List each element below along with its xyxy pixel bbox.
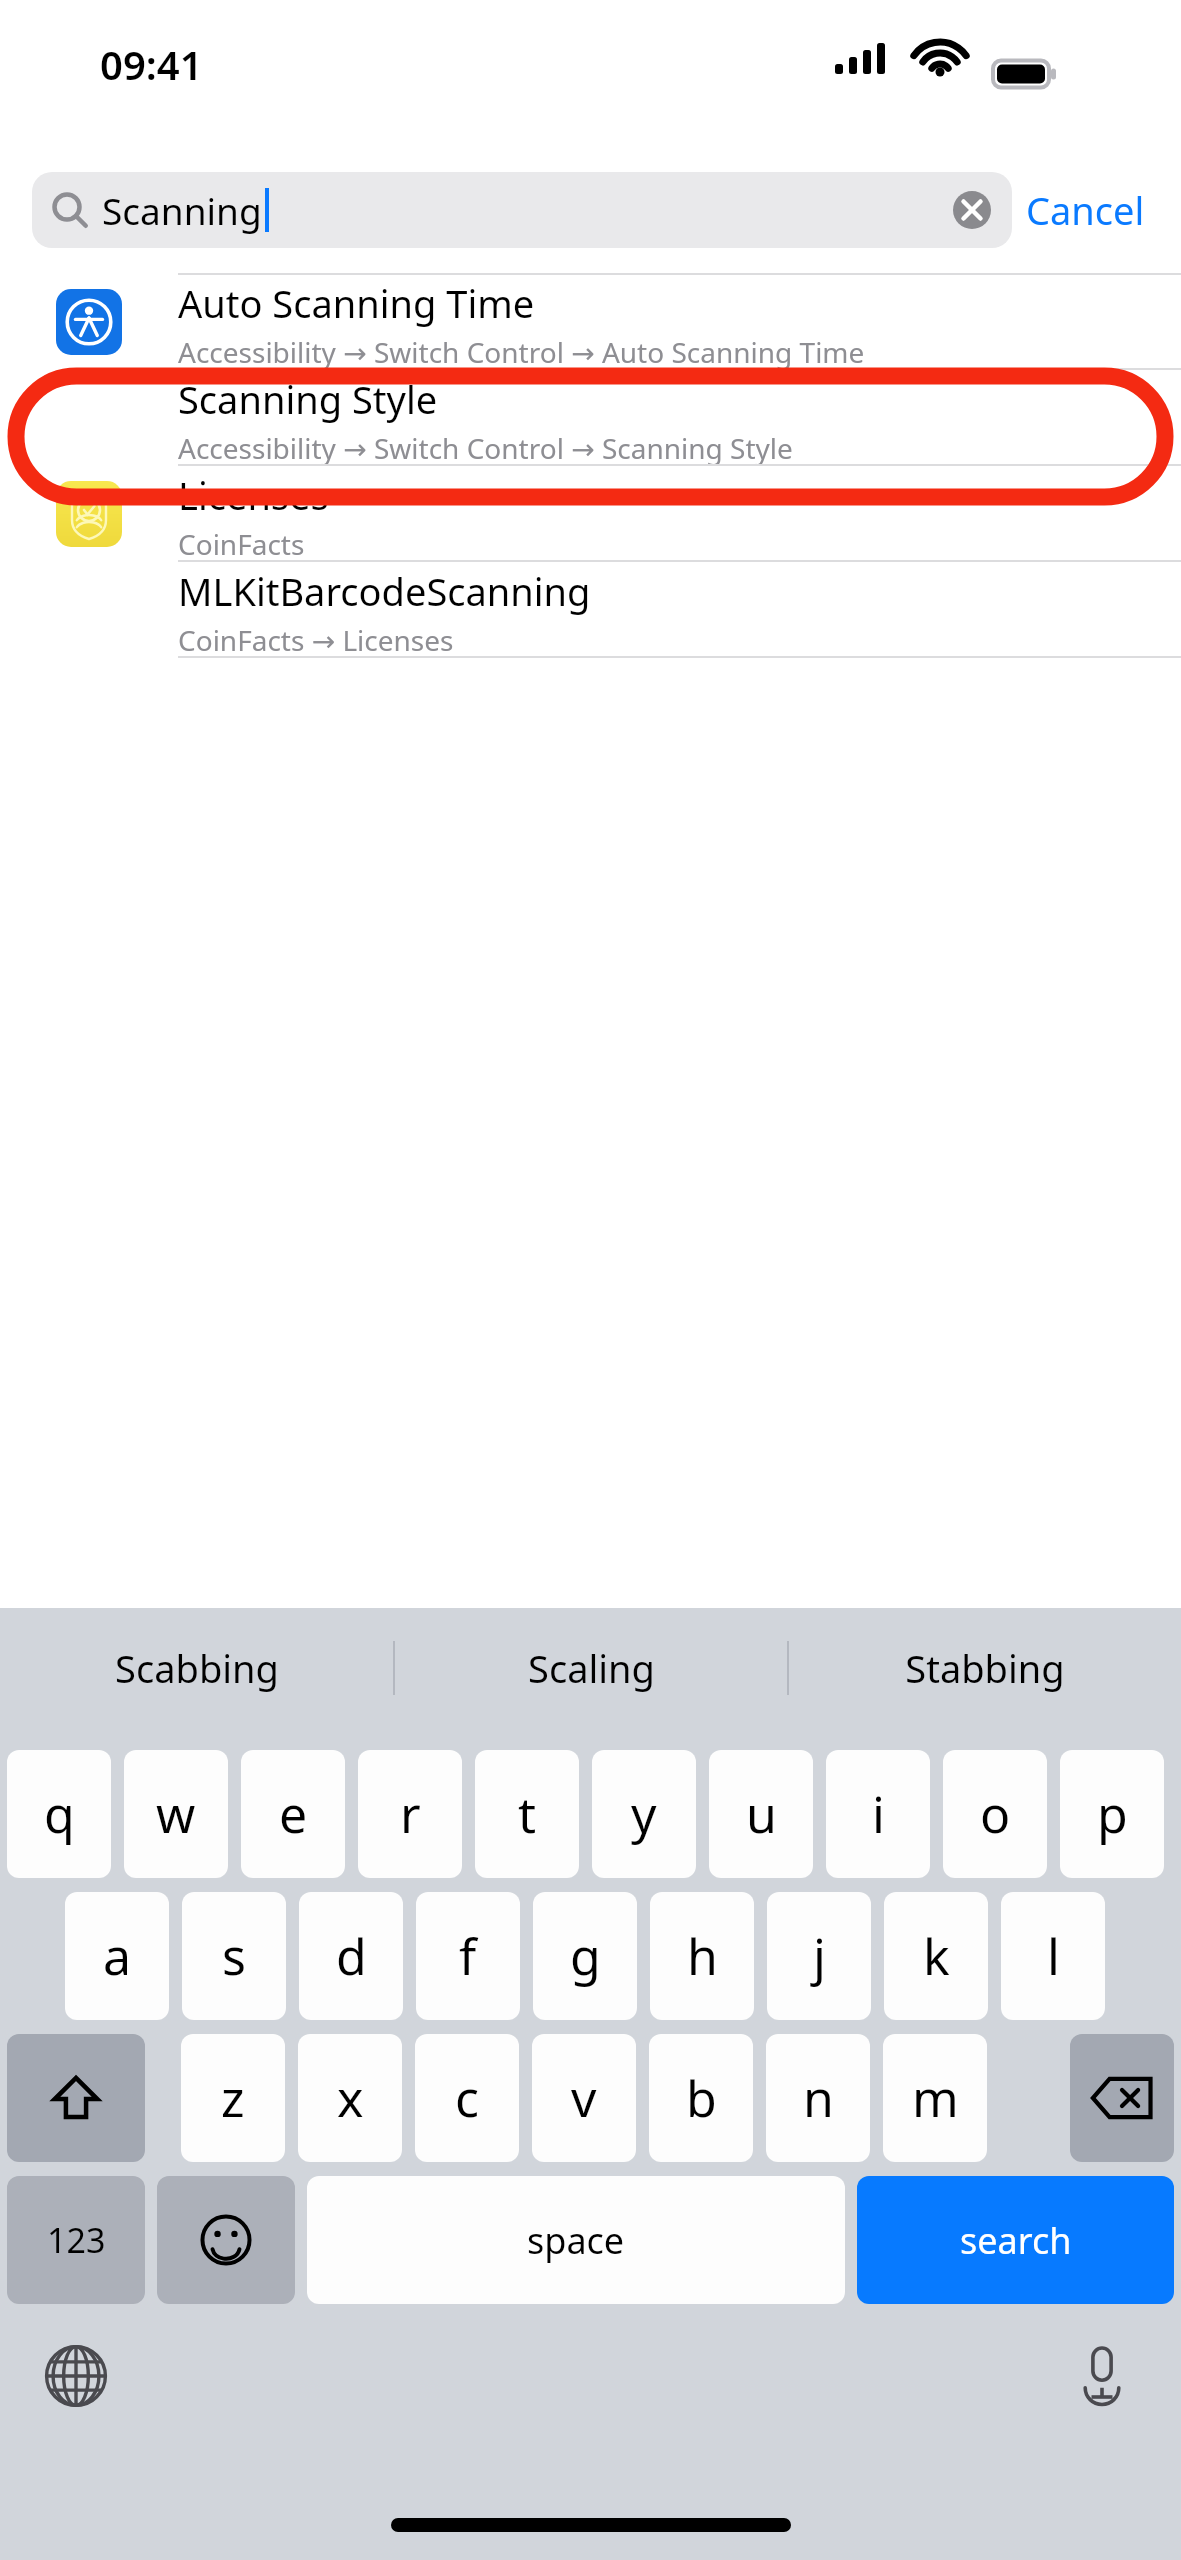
staticText: o [980,1780,1011,1848]
staticText: c [455,2064,479,2132]
staticText: Stabbing [905,1642,1065,1694]
staticText: Auto Scanning Time [178,277,535,329]
staticText: Cancel [1026,184,1145,236]
button[interactable]: e [241,1750,345,1878]
button[interactable]: Emoji [157,2176,295,2304]
button[interactable]: Scanning Style [0,370,1181,466]
button[interactable]: MLKitBarcodeScanning [0,562,1181,658]
staticText: f [459,1922,477,1990]
staticText: search [960,2216,1072,2265]
button[interactable]: i [826,1750,930,1878]
staticText: u [746,1780,777,1848]
button[interactable]: y [592,1750,696,1878]
button[interactable]: Stabbing [789,1608,1181,1728]
button[interactable]: t [475,1750,579,1878]
button[interactable]: j [767,1892,871,2020]
staticText: z [221,2064,245,2132]
staticText: MLKitBarcodeScanning [178,565,591,617]
button[interactable]: Auto Scanning Time [0,273,1181,370]
staticText: p [1097,1780,1128,1848]
staticText: Scanning Style [178,373,438,425]
button[interactable]: v [532,2034,636,2162]
button[interactable]: search [857,2176,1174,2304]
button[interactable]: u [709,1750,813,1878]
button[interactable]: Shift [7,2034,145,2162]
staticText: x [337,2064,364,2132]
button[interactable]: b [649,2034,753,2162]
button[interactable]: q [7,1750,111,1878]
button[interactable]: r [358,1750,462,1878]
staticText: i [872,1780,885,1848]
button[interactable]: Scanning [32,172,1012,248]
staticText: t [518,1780,537,1848]
staticText: Scabbing [115,1642,279,1694]
button[interactable]: n [766,2034,870,2162]
button[interactable]: l [1001,1892,1105,2020]
staticText: v [571,2064,597,2132]
staticText: Scanning [102,185,262,235]
staticText: y [631,1780,657,1848]
staticText: 123 [47,2217,106,2263]
button[interactable]: h [650,1892,754,2020]
button[interactable]: Dictation [1062,2336,1142,2416]
button[interactable]: 123 [7,2176,145,2304]
button[interactable]: Change keyboard language [36,2336,116,2416]
button[interactable]: Clear text [950,188,994,232]
staticText: CoinFacts [178,525,305,563]
button[interactable]: f [416,1892,520,2020]
staticText: space [527,2216,625,2265]
button[interactable]: w [124,1750,228,1878]
button[interactable]: Scabbing [0,1608,393,1728]
staticText: Scaling [528,1642,655,1694]
button[interactable]: Backspace [1070,2034,1174,2162]
button[interactable]: space [307,2176,845,2304]
staticText: Accessibility → Switch Control → Auto Sc… [178,333,865,371]
staticText: b [686,2064,717,2132]
button[interactable]: z [181,2034,285,2162]
button[interactable]: c [415,2034,519,2162]
button[interactable]: Licenses [0,466,1181,562]
button[interactable]: p [1060,1750,1164,1878]
staticText: 09:41 [100,37,203,91]
staticText: q [44,1780,75,1848]
staticText: l [1047,1922,1060,1990]
button[interactable]: s [182,1892,286,2020]
staticText: k [923,1922,950,1990]
staticText: m [912,2064,959,2132]
button[interactable]: g [533,1892,637,2020]
staticText: e [279,1780,308,1848]
button[interactable]: Cancel [1012,176,1159,244]
staticText: h [687,1922,718,1990]
staticText: g [570,1922,601,1990]
staticText: a [103,1922,132,1990]
button[interactable]: d [299,1892,403,2020]
button[interactable]: k [884,1892,988,2020]
staticText: j [813,1922,826,1990]
button[interactable]: m [883,2034,987,2162]
button[interactable]: o [943,1750,1047,1878]
staticText: Accessibility → Switch Control → Scannin… [178,429,793,467]
staticText: CoinFacts → Licenses [178,621,454,659]
staticText: d [336,1922,367,1990]
button[interactable]: x [298,2034,402,2162]
staticText: n [803,2064,834,2132]
staticText: s [222,1922,246,1990]
staticText: r [400,1780,421,1848]
button[interactable]: a [65,1892,169,2020]
staticText: Licenses [178,469,329,521]
button[interactable]: Scaling [395,1608,787,1728]
staticText: w [156,1780,196,1848]
